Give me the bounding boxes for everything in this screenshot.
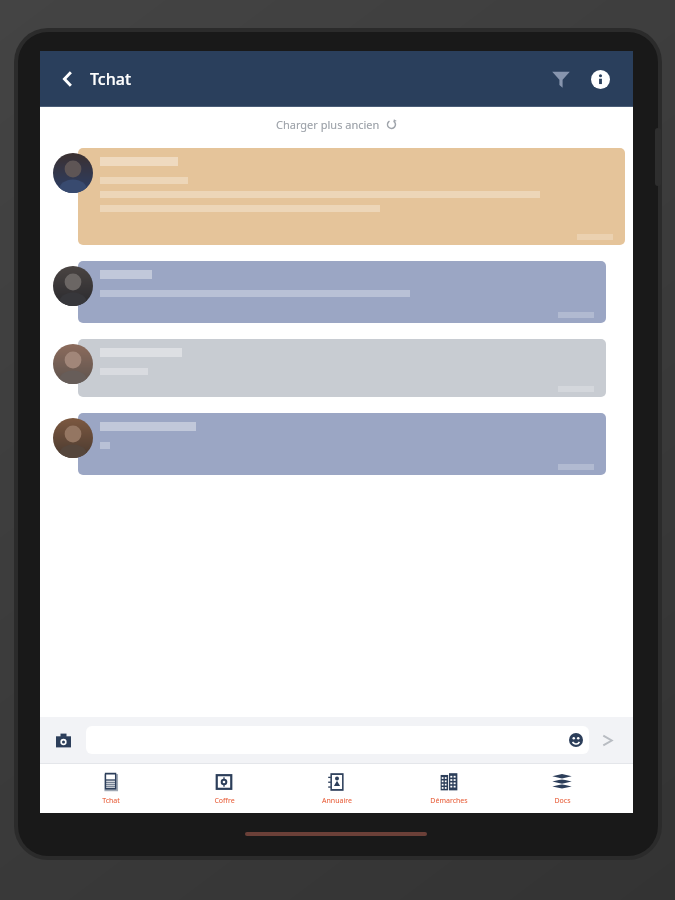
button[interactable]: Filter (541, 59, 581, 99)
button[interactable] (40, 259, 633, 329)
button[interactable]: Back (50, 61, 86, 97)
button[interactable] (86, 726, 589, 754)
staticText: Coffre (214, 796, 235, 806)
button[interactable]: Annuaire (295, 763, 379, 813)
staticText: Annuaire (322, 796, 352, 806)
button[interactable]: Démarches (407, 763, 491, 813)
button[interactable]: Coffre (182, 763, 266, 813)
button[interactable]: Send (589, 722, 625, 758)
staticText: Docs (554, 796, 571, 806)
staticText: Charger plus ancien (276, 117, 380, 132)
button[interactable] (40, 141, 633, 251)
staticText: Démarches (430, 796, 468, 806)
button[interactable] (40, 411, 633, 481)
button[interactable]: Information (581, 60, 619, 98)
button[interactable]: Docs (520, 763, 604, 813)
button[interactable] (40, 337, 633, 403)
button[interactable]: Tchat (69, 763, 153, 813)
staticText: Tchat (90, 68, 132, 90)
staticText: Tchat (102, 796, 120, 806)
button[interactable]: Charger plus ancien (40, 107, 633, 141)
button[interactable]: Camera (48, 725, 78, 755)
